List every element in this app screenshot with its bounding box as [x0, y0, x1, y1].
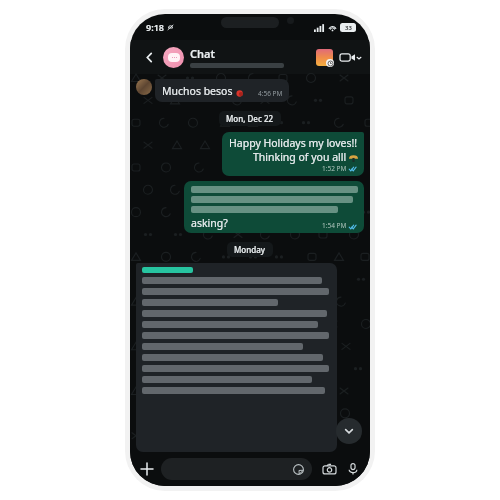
button[interactable]: Camera	[319, 459, 339, 479]
button[interactable]: Muchos besos	[155, 79, 289, 102]
button[interactable]: Scroll to bottom	[336, 418, 362, 444]
button[interactable]: asking?	[184, 181, 364, 233]
staticText: asking?	[191, 216, 228, 230]
button[interactable]: Back	[138, 46, 160, 68]
button[interactable]: Attach	[137, 459, 157, 479]
button[interactable]: Video call	[340, 52, 362, 63]
staticText: Monday	[234, 244, 266, 255]
staticText: Thinking of you alll	[253, 150, 347, 164]
button[interactable]	[136, 263, 337, 452]
staticText: 1:54 PM	[322, 221, 347, 230]
staticText: Muchos besos	[162, 84, 233, 98]
staticText: 33	[345, 24, 352, 32]
staticText: Mon, Dec 22	[226, 113, 274, 124]
button[interactable]: Chat	[190, 46, 311, 68]
button[interactable]: Status	[315, 48, 334, 67]
staticText: Happy Holidays my loves!!	[229, 136, 358, 150]
staticText: 9:18	[146, 21, 164, 33]
button[interactable]: Voice message	[343, 459, 363, 479]
button[interactable]	[161, 458, 312, 480]
staticText: Chat	[190, 46, 215, 61]
staticText: 4:56 PM	[258, 89, 283, 98]
button[interactable]: Happy Holidays my loves!!	[222, 132, 364, 176]
staticText: 1:52 PM	[322, 164, 347, 173]
